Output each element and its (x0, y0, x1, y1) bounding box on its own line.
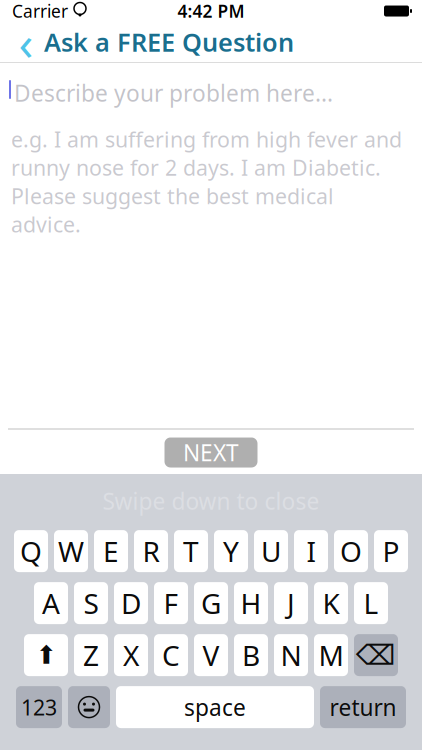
button[interactable]: 123 (16, 686, 62, 728)
button[interactable]: G (194, 582, 228, 624)
staticText: K (322, 584, 339, 622)
staticText: V (202, 636, 219, 674)
staticText: A (42, 584, 60, 622)
staticText: Y (223, 532, 239, 570)
staticText: L (363, 584, 378, 622)
button[interactable]: P (374, 530, 408, 572)
staticText: F (163, 584, 178, 622)
button[interactable]: Shift (24, 634, 68, 676)
staticText: N (280, 636, 301, 674)
button[interactable]: W (54, 530, 88, 572)
button[interactable]: Z (74, 634, 108, 676)
button[interactable]: Emoji (68, 686, 110, 728)
button[interactable]: Y (214, 530, 248, 572)
button[interactable]: U (254, 530, 288, 572)
button[interactable]: F (154, 582, 188, 624)
staticText: Q (20, 532, 42, 570)
button[interactable]: L (354, 582, 388, 624)
staticText: U (261, 532, 281, 570)
staticText: 123 (21, 693, 57, 721)
button[interactable]: H (234, 582, 268, 624)
staticText: return (329, 692, 396, 722)
button[interactable]: S (74, 582, 108, 624)
staticText: D (121, 584, 141, 622)
button[interactable]: X (114, 634, 148, 676)
staticText: X (123, 636, 139, 674)
staticText: Z (83, 636, 99, 674)
staticText: Carrier (12, 0, 68, 22)
button[interactable]: Delete (354, 634, 398, 676)
staticText: NEXT (183, 437, 239, 467)
button[interactable]: Q (14, 530, 48, 572)
staticText: H (240, 584, 261, 622)
staticText: Swipe down to close (102, 486, 319, 516)
staticText: Describe your problem here... (14, 78, 333, 108)
button[interactable]: A (34, 582, 68, 624)
button[interactable]: I (294, 530, 328, 572)
staticText: R (142, 532, 159, 570)
button[interactable]: NEXT (164, 437, 257, 467)
button[interactable]: B (234, 634, 268, 676)
button[interactable]: M (314, 634, 348, 676)
button[interactable]: R (134, 530, 168, 572)
staticText: O (340, 532, 362, 570)
button[interactable]: Back (8, 22, 44, 62)
button[interactable]: T (174, 530, 208, 572)
staticText: Ask a FREE Question (44, 25, 294, 59)
staticText: M (318, 636, 343, 674)
staticText: e.g. I am suffering from high fever and … (11, 125, 402, 238)
button[interactable]: N (274, 634, 308, 676)
staticText: ⬆ (35, 641, 56, 669)
staticText: C (162, 636, 180, 674)
button[interactable]: C (154, 634, 188, 676)
button[interactable]: K (314, 582, 348, 624)
button[interactable]: E (94, 530, 128, 572)
staticText: S (83, 584, 98, 622)
staticText: G (201, 584, 221, 622)
button[interactable]: O (334, 530, 368, 572)
button[interactable]: return (320, 686, 406, 728)
staticText: W (58, 532, 84, 570)
button[interactable]: D (114, 582, 148, 624)
staticText: ‹ (18, 10, 33, 74)
staticText: I (306, 532, 315, 570)
staticText: P (382, 532, 399, 570)
staticText: space (184, 692, 246, 722)
staticText: J (287, 584, 295, 622)
button[interactable]: space (116, 686, 314, 728)
staticText: ⌫ (356, 639, 396, 671)
staticText: T (183, 532, 199, 570)
staticText: B (242, 636, 260, 674)
staticText: 4:42 PM (177, 0, 244, 22)
button[interactable]: V (194, 634, 228, 676)
staticText: E (103, 532, 119, 570)
button[interactable]: J (274, 582, 308, 624)
